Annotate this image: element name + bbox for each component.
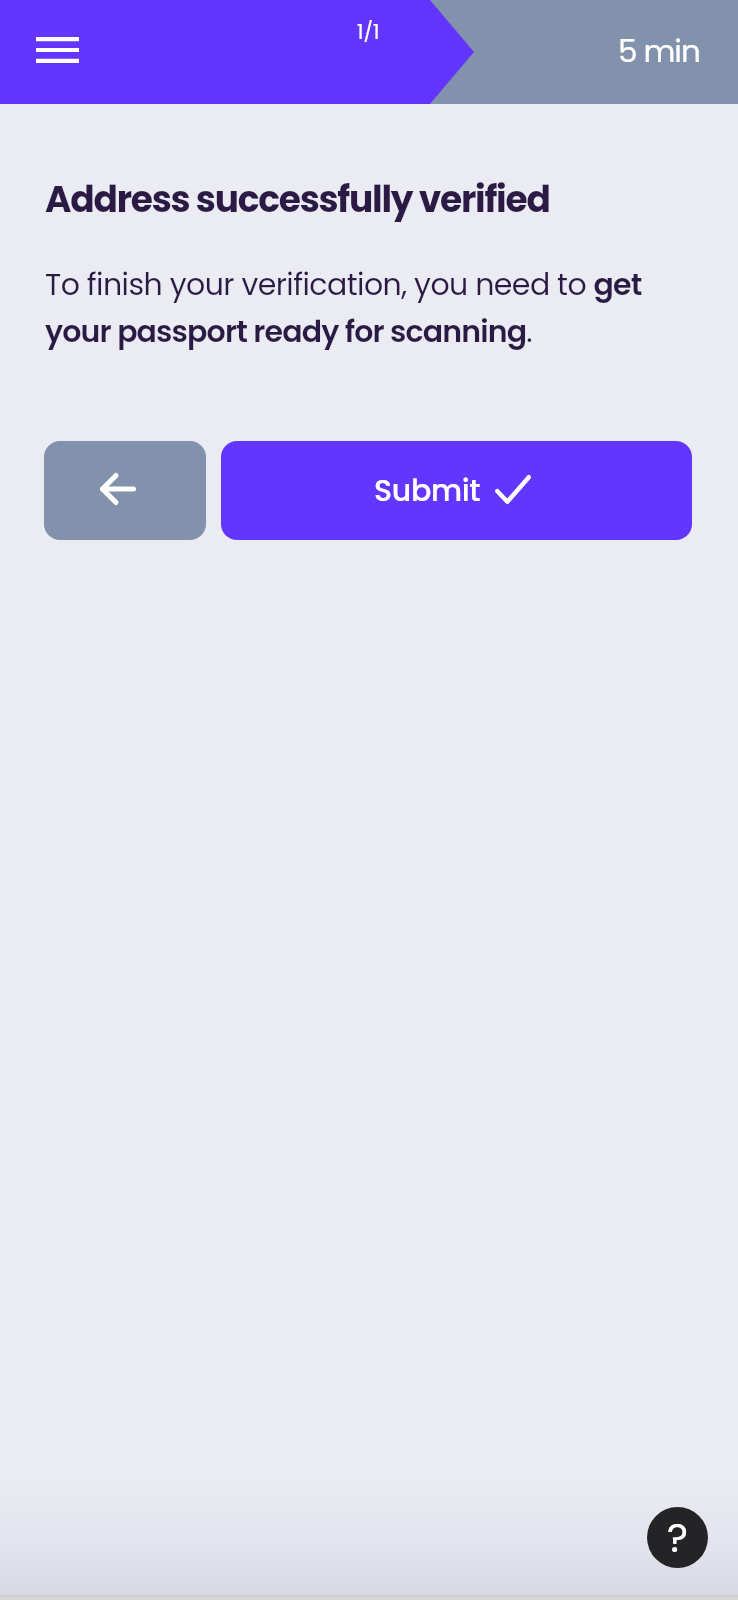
staticText: To finish your verification, you need to… [45,264,642,353]
staticText: Submit [374,470,481,512]
button[interactable]: Help [647,1507,708,1568]
button[interactable]: Menu [26,19,88,81]
staticText: Address successfully verified [45,174,550,224]
button[interactable]: Submit [221,441,692,540]
button[interactable]: Back [44,441,206,540]
staticText: 1/1 [357,18,380,46]
staticText: 5 min [618,29,700,72]
staticText: ? [667,1510,688,1566]
